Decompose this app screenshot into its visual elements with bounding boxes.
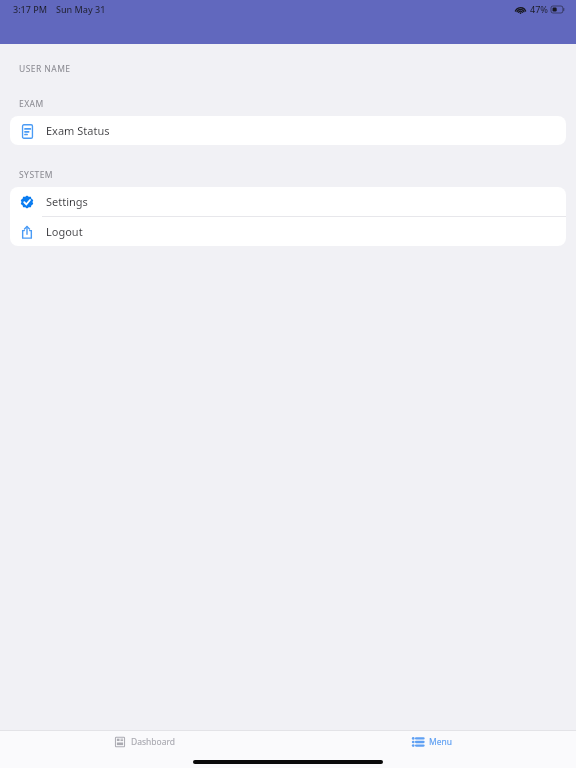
button[interactable]: Menu [401,731,463,752]
button[interactable]: Logout [10,217,566,246]
staticText: SYSTEM [19,169,54,181]
staticText: Settings [46,194,88,209]
staticText: Sun May 31 [56,3,106,15]
staticText: USER NAME [19,63,71,75]
other: Dashboard [113,735,126,748]
staticText: Dashboard [131,736,176,748]
button[interactable]: Dashboard [103,731,186,752]
staticText: Exam Status [46,123,110,138]
staticText: Logout [46,224,83,239]
staticText: EXAM [19,98,44,110]
other: Menu [411,735,424,748]
staticText: 47% [530,3,548,15]
button[interactable]: Exam Status [10,116,566,145]
staticText: 3:17 PM [13,3,47,15]
staticText: Menu [429,736,453,748]
button[interactable]: Settings [10,187,566,216]
